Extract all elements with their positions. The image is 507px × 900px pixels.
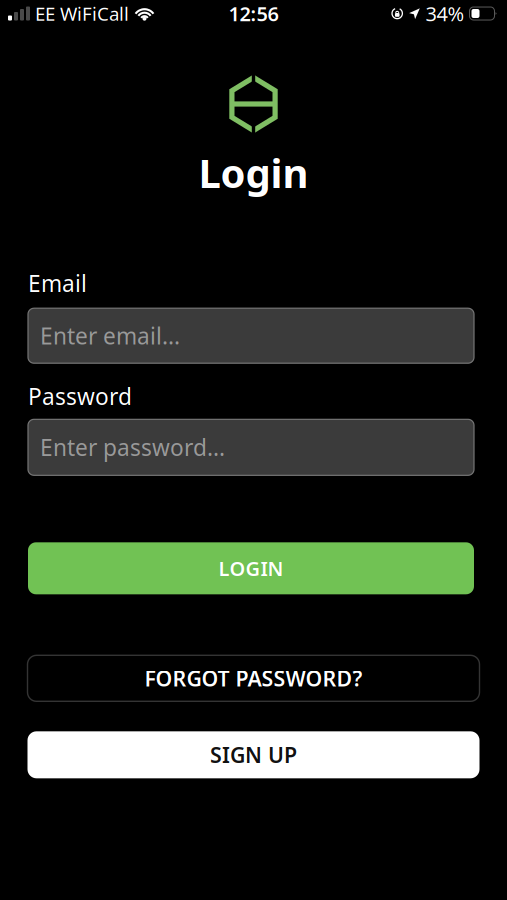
staticText: 12:56 — [228, 0, 278, 27]
staticText: Enter email... — [40, 321, 180, 351]
staticText: Enter password... — [40, 432, 225, 462]
button[interactable]: SIGN UP — [27, 731, 479, 778]
button[interactable]: Enter password... — [28, 419, 474, 475]
staticText: SIGN UP — [210, 741, 297, 769]
button[interactable]: FORGOT PASSWORD? — [27, 655, 479, 701]
staticText: Login — [198, 146, 308, 199]
staticText: FORGOT PASSWORD? — [144, 664, 362, 692]
staticText: 34% — [425, 0, 464, 27]
button[interactable]: LOGIN — [28, 542, 474, 594]
staticText: LOGIN — [218, 555, 283, 582]
staticText: EE WiFiCall — [35, 1, 129, 26]
staticText: Password — [28, 381, 132, 411]
staticText: Email — [28, 268, 87, 298]
button[interactable]: Enter email... — [28, 308, 474, 363]
